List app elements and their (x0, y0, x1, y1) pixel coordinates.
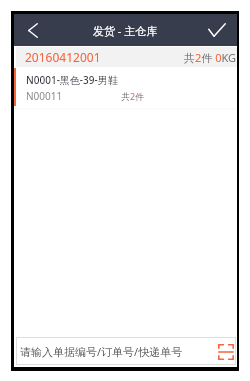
staticText: 发货 - 主仓库 (93, 23, 158, 38)
button[interactable]: Confirm (197, 14, 237, 46)
button[interactable]: Back (14, 14, 51, 46)
button[interactable]: Scan (217, 337, 235, 365)
staticText: 请输入单据编号/订单号/快递单号 (20, 344, 183, 359)
staticText: 共2件 (121, 90, 145, 102)
staticText: N0001-黑色-39-男鞋 (26, 73, 118, 87)
button[interactable]: N0001-黑色-39-男鞋 (14, 67, 237, 108)
staticText: N00011 (26, 89, 63, 103)
staticText: 共2件 0KG (184, 50, 237, 65)
staticText: 20160412001 (25, 49, 101, 65)
